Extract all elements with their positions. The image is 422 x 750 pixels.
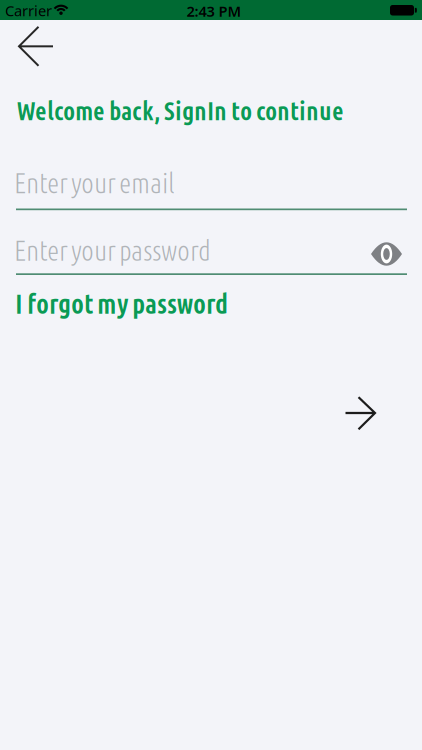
button[interactable]: I forgot my password: [15, 288, 228, 319]
staticText: 2:43 PM: [186, 1, 241, 21]
button[interactable]: Enter your email: [16, 170, 407, 211]
button[interactable]: [17, 2, 71, 72]
button[interactable]: [370, 242, 402, 266]
staticText: Enter your email: [14, 167, 174, 199]
staticText: Enter your password: [14, 235, 210, 266]
button[interactable]: Enter your password: [16, 237, 407, 277]
staticText: Welcome back, SignIn to continue: [17, 96, 344, 125]
staticText: I forgot my password: [15, 288, 228, 319]
staticText: Carrier: [5, 1, 52, 20]
button[interactable]: [345, 396, 376, 430]
